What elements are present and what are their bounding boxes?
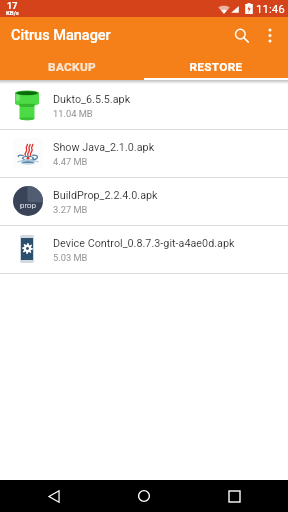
staticText: RESTORE bbox=[189, 60, 243, 74]
staticText: Dukto_6.5.5.apk bbox=[53, 93, 131, 106]
staticText: 3.27 MB bbox=[53, 204, 88, 215]
button[interactable]: Recent apps bbox=[210, 480, 258, 512]
button[interactable]: BACKUP bbox=[0, 56, 144, 80]
button[interactable]: More options bbox=[255, 16, 285, 55]
staticText: KB/s bbox=[6, 9, 19, 16]
button[interactable]: Back bbox=[30, 480, 78, 512]
staticText: 11:46 bbox=[256, 2, 285, 15]
staticText: 11.04 MB bbox=[53, 108, 93, 119]
staticText: 17 bbox=[7, 1, 18, 12]
button[interactable]: Show Java_2.1.0.apk bbox=[0, 130, 288, 177]
button[interactable]: Search bbox=[227, 16, 255, 55]
staticText: Show Java_2.1.0.apk bbox=[53, 141, 155, 154]
staticText: Citrus Manager bbox=[11, 27, 111, 44]
staticText: prop bbox=[20, 201, 36, 210]
button[interactable]: Device Control_0.8.7.3-git-a4ae0d.apk bbox=[0, 226, 288, 273]
button[interactable]: Dukto_6.5.5.apk bbox=[0, 82, 288, 129]
staticText: 5.03 MB bbox=[53, 252, 88, 263]
staticText: BACKUP bbox=[48, 60, 96, 74]
staticText: 4.47 MB bbox=[53, 156, 88, 167]
button[interactable]: prop bbox=[0, 178, 288, 225]
button[interactable]: RESTORE bbox=[144, 56, 288, 80]
staticText: BuildProp_2.2.4.0.apk bbox=[53, 189, 158, 202]
staticText: Device Control_0.8.7.3-git-a4ae0d.apk bbox=[53, 237, 235, 250]
button[interactable]: Home bbox=[120, 480, 168, 512]
